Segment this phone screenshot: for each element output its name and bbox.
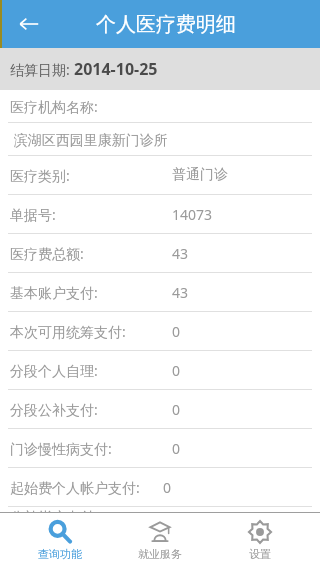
staticText: 公补帐户支付: <box>10 507 98 512</box>
button[interactable]: 设置 <box>220 513 300 568</box>
staticText: 0 <box>172 361 181 380</box>
staticText: 本次可用统筹支付: <box>10 322 126 341</box>
button[interactable]: 查询功能 <box>20 513 100 568</box>
staticText: 2014-10-25 <box>74 58 158 80</box>
button[interactable]: 基本账户支付: <box>0 273 320 312</box>
staticText: 0 <box>172 400 181 419</box>
button[interactable]: 门诊慢性病支付: <box>0 429 320 468</box>
staticText: 医疗费总额: <box>10 244 84 263</box>
staticText: 单据号: <box>10 205 56 224</box>
staticText: 14073 <box>172 205 213 224</box>
staticText: 0 <box>172 439 181 458</box>
button[interactable]: 就业服务 <box>120 513 200 568</box>
staticText: 滨湖区西园里康新门诊所 <box>10 130 168 149</box>
staticText: 普通门诊 <box>172 166 228 184</box>
staticText: 0 <box>163 478 172 497</box>
staticText: 起始费个人帐户支付: <box>10 478 140 497</box>
staticText: 门诊慢性病支付: <box>10 439 112 458</box>
button[interactable]: 起始费个人帐户支付: <box>0 468 320 507</box>
staticText: 分段个人自理: <box>10 361 98 380</box>
button[interactable]: 医疗类别: <box>0 156 320 195</box>
button[interactable]: 单据号: <box>0 195 320 234</box>
staticText: 结算日期: <box>10 60 74 79</box>
staticText: 医疗机构名称: <box>10 97 98 116</box>
button[interactable]: 滨湖区西园里康新门诊所 <box>0 123 320 156</box>
staticText: 0 <box>172 322 181 341</box>
button[interactable]: 本次可用统筹支付: <box>0 312 320 351</box>
staticText: 43 <box>172 283 189 302</box>
button[interactable]: 分段公补支付: <box>0 390 320 429</box>
staticText: 43 <box>172 244 189 263</box>
staticText: 设置 <box>249 547 271 561</box>
button[interactable]: 医疗费总额: <box>0 234 320 273</box>
staticText: 医疗类别: <box>10 166 70 185</box>
staticText: 查询功能 <box>38 547 82 561</box>
staticText: 就业服务 <box>138 547 182 561</box>
button[interactable]: 公补帐户支付: <box>0 507 320 512</box>
button[interactable]: 分段个人自理: <box>0 351 320 390</box>
button[interactable]: 医疗机构名称: <box>0 90 320 123</box>
staticText: 个人医疗费明细 <box>96 12 236 37</box>
staticText: 分段公补支付: <box>10 400 98 419</box>
staticText: 基本账户支付: <box>10 283 98 302</box>
button[interactable]: Back <box>8 3 50 45</box>
